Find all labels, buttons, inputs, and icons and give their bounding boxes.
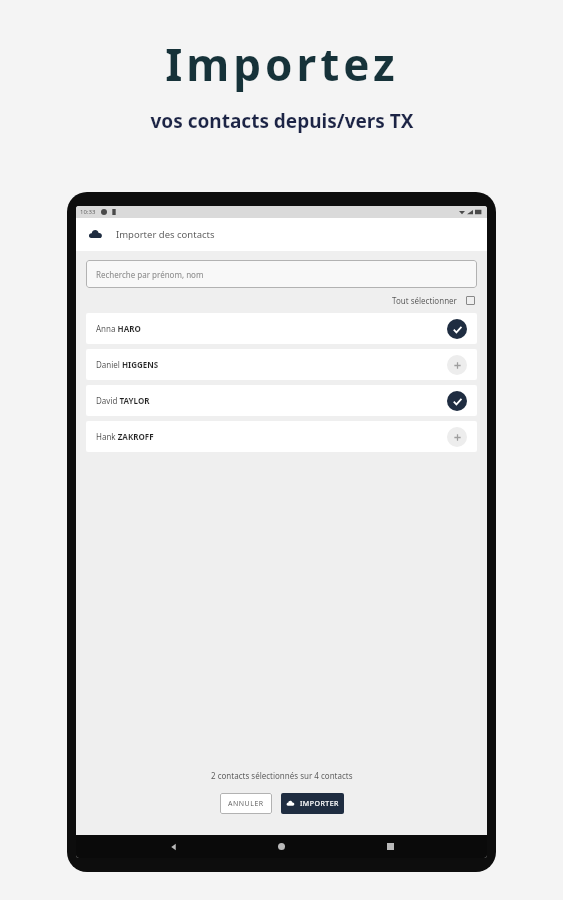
- staticText: IMPORTER: [300, 799, 339, 809]
- button[interactable]: Home: [270, 835, 293, 858]
- button[interactable]: IMPORTER: [281, 793, 344, 814]
- button[interactable]: Select contact: [447, 355, 467, 375]
- button[interactable]: Recherche par prénom, nom: [86, 260, 477, 288]
- staticText: David TAYLOR: [96, 395, 150, 406]
- button[interactable]: David TAYLOR: [86, 385, 477, 416]
- staticText: Importez: [165, 34, 399, 94]
- staticText: vos contacts depuis/vers TX: [150, 108, 414, 134]
- staticText: Anna HARO: [96, 323, 141, 334]
- button[interactable]: Deselect contact: [447, 391, 467, 411]
- button[interactable]: Recents: [379, 835, 402, 858]
- staticText: Importer des contacts: [116, 228, 215, 241]
- staticText: Daniel HIGGENS: [96, 359, 159, 370]
- staticText: 2 contacts sélectionnés sur 4 contacts: [211, 770, 353, 781]
- button[interactable]: Back: [162, 835, 185, 858]
- button[interactable]: Daniel HIGGENS: [86, 349, 477, 380]
- button[interactable]: Select contact: [447, 427, 467, 447]
- button[interactable]: Deselect contact: [447, 319, 467, 339]
- staticText: Hank ZAKROFF: [96, 431, 154, 442]
- button[interactable]: Hank ZAKROFF: [86, 421, 477, 452]
- staticText: 10:33: [80, 208, 96, 216]
- button[interactable]: Anna HARO: [86, 313, 477, 344]
- staticText: ANNULER: [228, 799, 264, 809]
- button[interactable]: Tout sélectionner: [390, 293, 477, 308]
- staticText: Tout sélectionner: [392, 295, 457, 306]
- staticText: Recherche par prénom, nom: [96, 269, 204, 280]
- button[interactable]: ANNULER: [220, 793, 272, 814]
